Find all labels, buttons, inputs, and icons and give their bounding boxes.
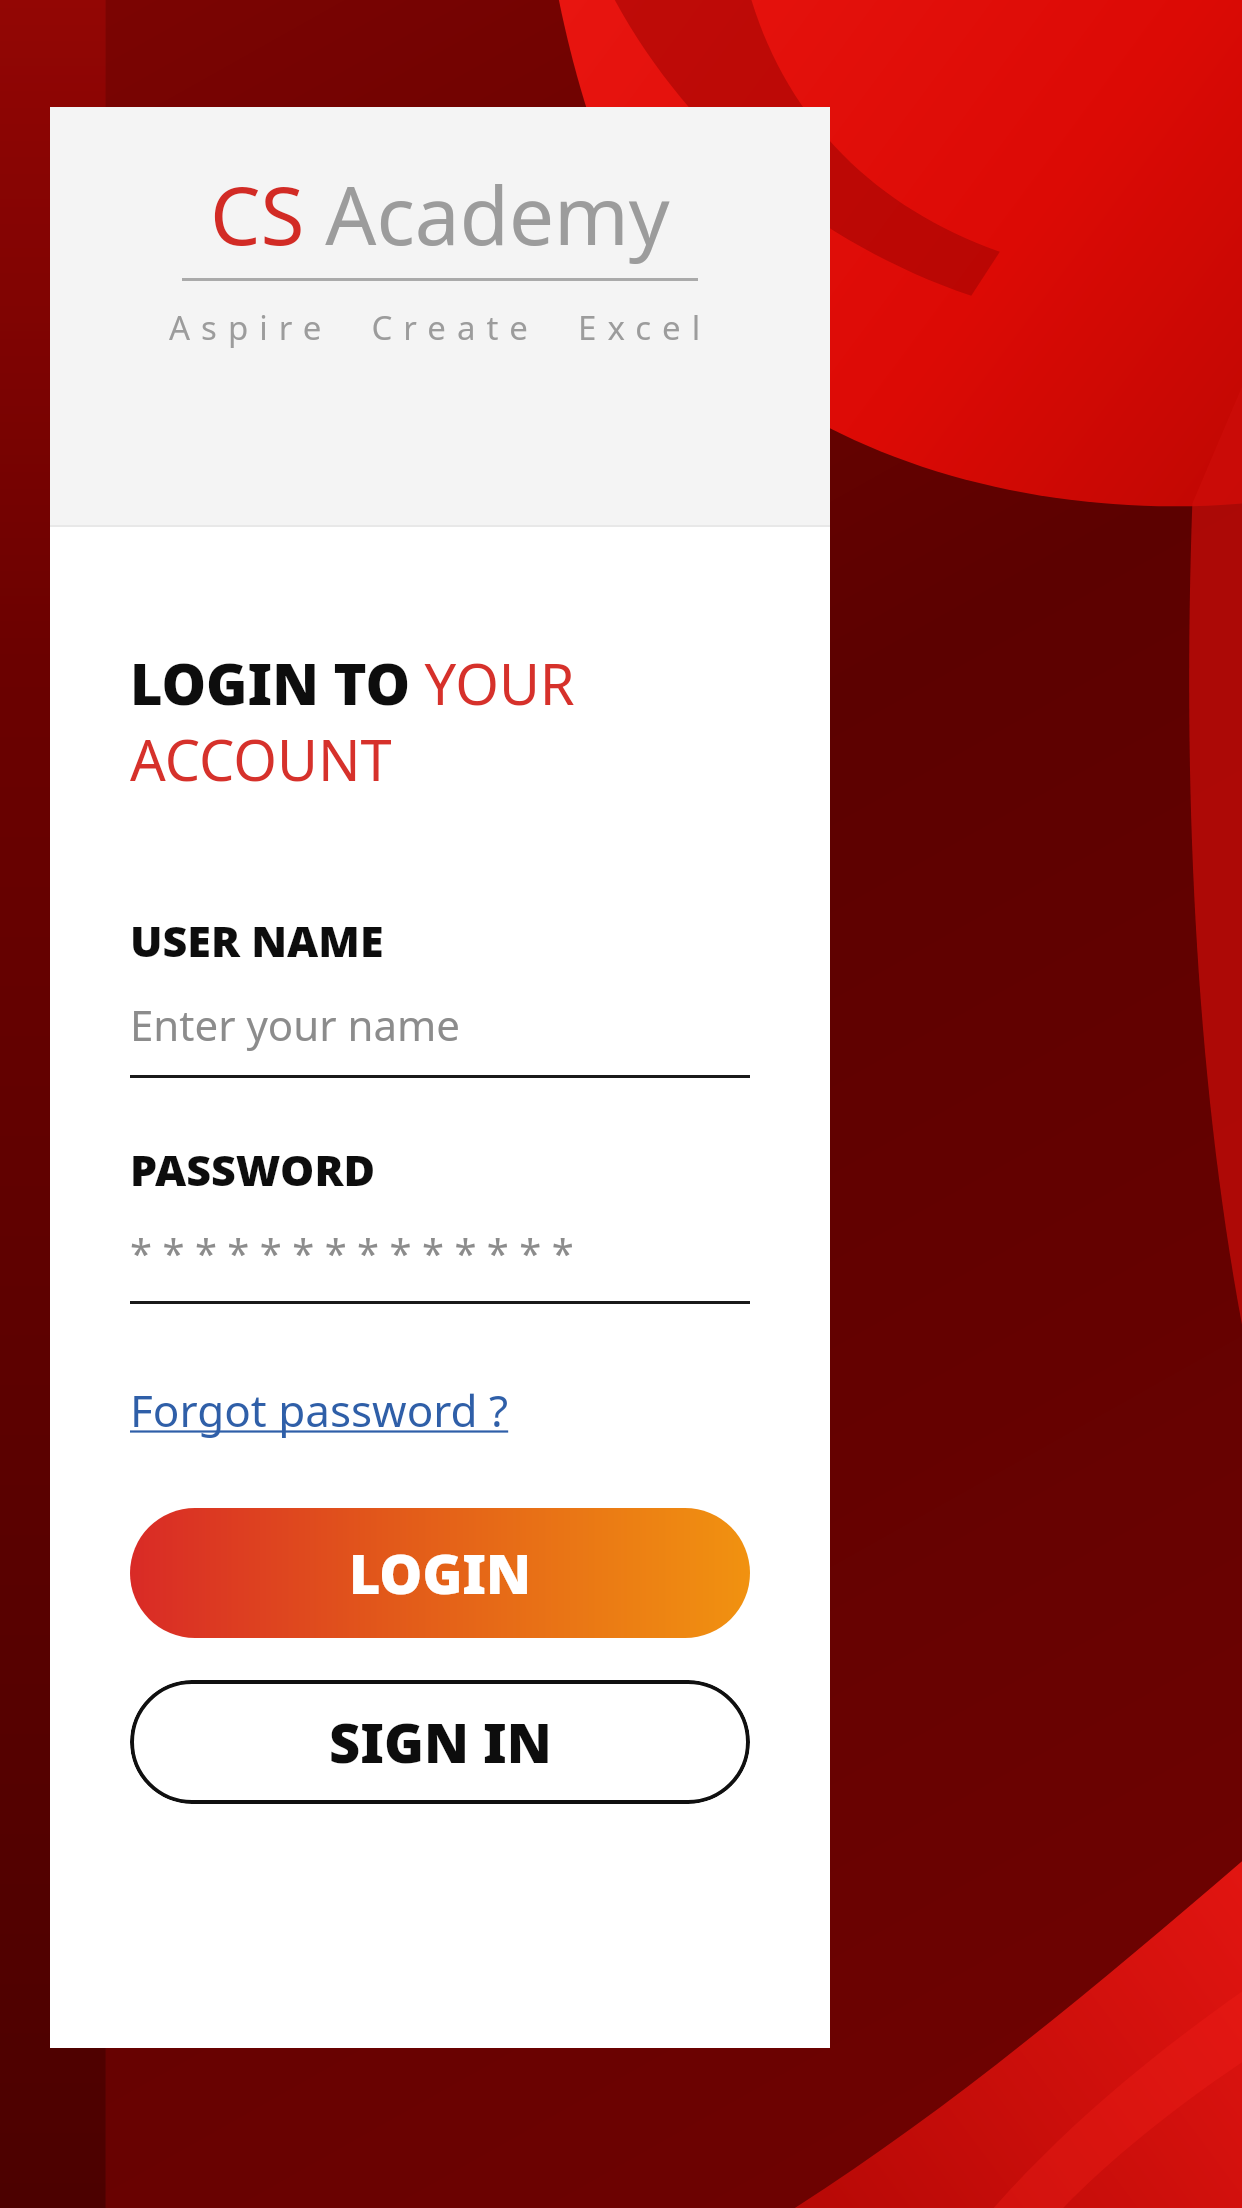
- button[interactable]: Forgot password ?: [130, 1374, 509, 1446]
- staticText: Forgot password ?: [130, 1380, 509, 1440]
- button[interactable]: USER NAME: [130, 911, 750, 1078]
- staticText: LOGIN: [349, 1536, 532, 1610]
- staticText: Enter your name: [130, 996, 460, 1053]
- button[interactable]: LOGIN: [130, 1508, 750, 1638]
- staticText: CS Academy: [210, 159, 670, 268]
- staticText: USER NAME: [130, 911, 384, 970]
- staticText: * * * * * * * * * * * * * *: [130, 1225, 574, 1279]
- staticText: PASSWORD: [130, 1140, 376, 1199]
- button[interactable]: PASSWORD: [130, 1140, 750, 1304]
- button[interactable]: SIGN IN: [130, 1680, 750, 1804]
- staticText: Aspire Create Excel: [169, 305, 712, 350]
- staticText: LOGIN TO YOUR ACCOUNT: [130, 645, 750, 797]
- staticText: SIGN IN: [329, 1705, 552, 1779]
